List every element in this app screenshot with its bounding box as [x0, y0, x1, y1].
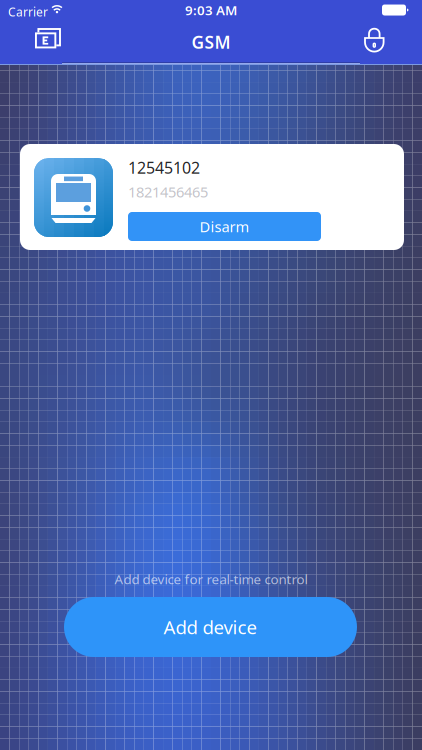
- staticText: GSM: [191, 30, 230, 53]
- button[interactable]: Disarm: [128, 212, 321, 241]
- staticText: Add device: [163, 615, 257, 639]
- button[interactable]: Lock: [360, 20, 422, 64]
- staticText: Add device for real-time control: [114, 570, 307, 588]
- button[interactable]: Devices: [0, 20, 62, 64]
- staticText: 1821456465: [128, 182, 208, 201]
- staticText: 9:03 AM: [185, 1, 237, 19]
- staticText: 12545102: [128, 157, 200, 178]
- staticText: Disarm: [199, 217, 249, 236]
- button[interactable]: Add device: [64, 597, 357, 657]
- staticText: Carrier: [8, 4, 48, 20]
